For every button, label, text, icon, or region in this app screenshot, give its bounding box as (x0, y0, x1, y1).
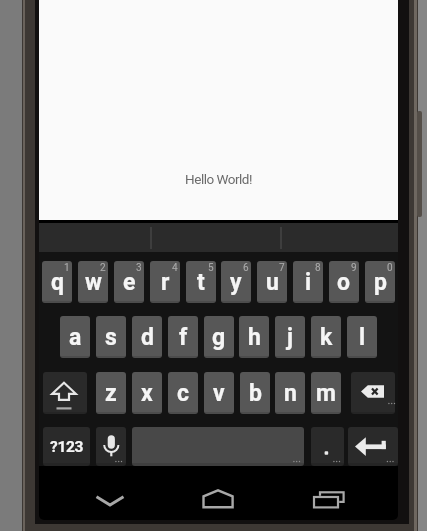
button[interactable]: w (78, 261, 108, 303)
staticText: u (266, 269, 279, 296)
staticText: b (249, 380, 262, 407)
button[interactable] (198, 479, 238, 519)
button[interactable]: a (60, 316, 90, 358)
button[interactable]: j (275, 316, 305, 358)
button[interactable] (351, 372, 395, 414)
button[interactable] (132, 427, 304, 466)
button[interactable]: ?123 (43, 427, 90, 466)
staticText: 1 (64, 262, 70, 274)
button[interactable] (302, 479, 346, 519)
staticText: p (374, 269, 387, 296)
button[interactable]: b (240, 372, 270, 414)
button[interactable]: r (150, 261, 180, 303)
staticText: w (85, 269, 102, 296)
button[interactable]: i (293, 261, 323, 303)
staticText: a (69, 324, 82, 351)
button[interactable]: g (204, 316, 234, 358)
staticText: y (230, 269, 242, 296)
button[interactable]: d (132, 316, 162, 358)
staticText: h (248, 324, 261, 351)
button[interactable]: f (168, 316, 198, 358)
button[interactable]: q (42, 261, 72, 303)
staticText: z (105, 380, 117, 407)
staticText: 0 (387, 262, 393, 274)
button[interactable]: k (311, 316, 341, 358)
button[interactable]: c (168, 372, 198, 414)
button[interactable]: p (365, 261, 395, 303)
button[interactable]: m (311, 372, 341, 414)
staticText: 5 (208, 262, 214, 274)
button[interactable] (96, 427, 126, 466)
staticText: 3 (136, 262, 142, 274)
button[interactable]: u (257, 261, 287, 303)
button[interactable]: z (96, 372, 126, 414)
staticText: ?123 (50, 438, 84, 456)
staticText: c (177, 380, 190, 407)
button[interactable]: e (114, 261, 144, 303)
staticText: 6 (243, 262, 249, 274)
button[interactable] (43, 372, 87, 414)
staticText: 7 (279, 262, 285, 274)
staticText: n (284, 380, 297, 407)
staticText: t (197, 269, 205, 296)
staticText: 8 (315, 262, 321, 274)
staticText: o (337, 269, 351, 296)
staticText: i (305, 269, 312, 296)
staticText: s (105, 324, 117, 351)
button[interactable]: v (204, 372, 234, 414)
staticText: x (141, 380, 153, 407)
staticText: d (141, 324, 154, 351)
button[interactable]: l (347, 316, 377, 358)
staticText: j (287, 324, 293, 351)
staticText: Hello World! (39, 171, 398, 187)
staticText: f (179, 324, 188, 351)
button[interactable]: t (186, 261, 216, 303)
staticText: 2 (100, 262, 106, 274)
button[interactable] (311, 427, 344, 466)
button[interactable] (348, 427, 398, 466)
staticText: k (320, 324, 333, 351)
staticText: e (123, 269, 136, 296)
staticText: 4 (172, 262, 178, 274)
button[interactable]: o (329, 261, 359, 303)
staticText: g (212, 324, 226, 351)
button[interactable]: x (132, 372, 162, 414)
staticText: v (213, 380, 225, 407)
button[interactable]: h (239, 316, 269, 358)
button[interactable]: s (96, 316, 126, 358)
button[interactable]: y (221, 261, 251, 303)
staticText: 9 (351, 262, 357, 274)
button[interactable]: n (275, 372, 305, 414)
staticText: l (359, 324, 366, 351)
button[interactable] (90, 481, 130, 521)
staticText: r (161, 269, 170, 296)
staticText: m (316, 380, 336, 407)
staticText: q (51, 269, 64, 296)
